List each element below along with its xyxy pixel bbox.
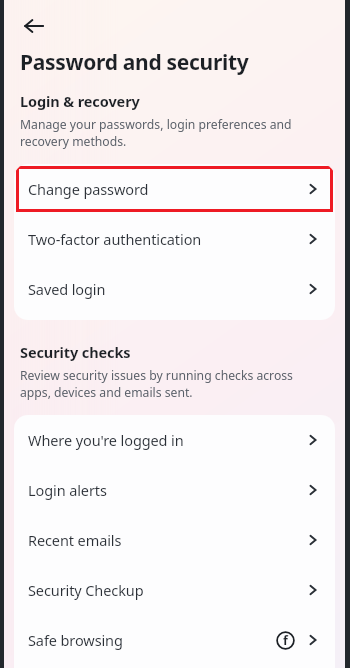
staticText: f — [283, 632, 288, 649]
button[interactable]: Two-factor authentication — [14, 214, 335, 264]
button[interactable]: Back — [17, 9, 51, 43]
staticText: Safe browsing — [28, 630, 276, 650]
button[interactable]: Saved login — [14, 264, 335, 314]
staticText: Manage your passwords, login preferences… — [20, 116, 323, 150]
staticText: Saved login — [28, 279, 305, 299]
button[interactable]: Where you're logged in — [14, 415, 335, 465]
staticText: Change password — [28, 179, 305, 199]
staticText: Two-factor authentication — [28, 229, 305, 249]
staticText: Recent emails — [28, 530, 305, 550]
button[interactable]: Recent emails — [14, 515, 335, 565]
staticText: Login & recovery — [20, 91, 140, 111]
staticText: Security checks — [20, 342, 131, 362]
staticText: Password and security — [20, 48, 249, 77]
button[interactable]: Safe browsing — [14, 615, 335, 665]
staticText: Where you're logged in — [28, 430, 305, 450]
button[interactable]: Change password — [14, 164, 335, 214]
staticText: Login alerts — [28, 480, 305, 500]
staticText: Security Checkup — [28, 580, 305, 600]
button[interactable]: Security Checkup — [14, 565, 335, 615]
staticText: Review security issues by running checks… — [20, 367, 327, 401]
button[interactable]: Login alerts — [14, 465, 335, 515]
